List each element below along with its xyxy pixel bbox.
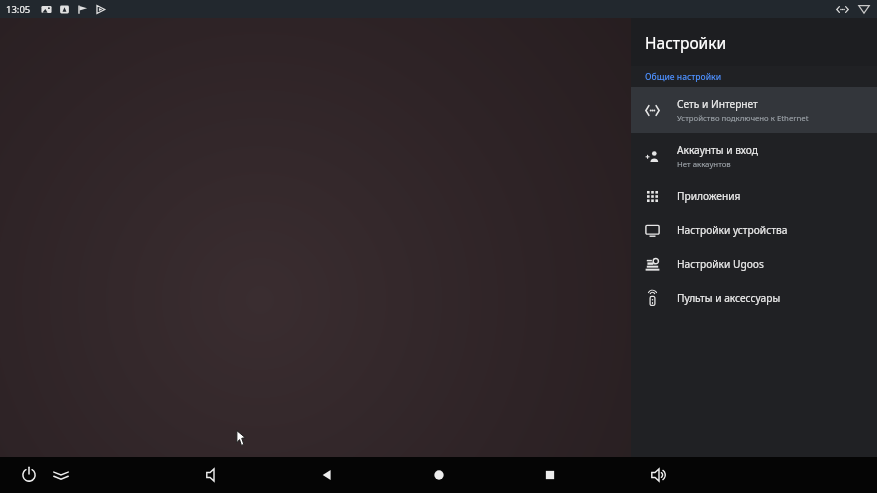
staticText: Сеть и Интернет [677,97,758,111]
button[interactable]: Volume up [648,464,670,486]
button[interactable]: Recents [539,464,561,486]
staticText: Пульты и аксессуары [677,291,781,305]
staticText: Устройство подключено к Ethernet [677,113,809,124]
button[interactable]: Collapse [50,464,72,486]
button[interactable]: Настройки Ugoos [631,247,877,281]
button[interactable]: Volume down [203,464,225,486]
staticText: 13:05 [6,3,31,16]
staticText: Аккаунты и вход [677,143,758,157]
staticText: Приложения [677,189,741,203]
staticText: Общие настройки [645,71,722,83]
staticText: Настройки устройства [677,223,788,237]
button[interactable]: Пульты и аксессуары [631,281,877,315]
button[interactable]: Сеть и Интернет [631,87,877,133]
staticText: Настройки Ugoos [677,257,764,271]
button[interactable]: Home [428,464,450,486]
button[interactable]: Приложения [631,179,877,213]
button[interactable]: Аккаунты и вход [631,133,877,179]
button[interactable]: Power [18,464,40,486]
button[interactable]: Back [316,464,338,486]
staticText: Настройки [645,32,727,53]
staticText: Нет аккаунтов [677,159,731,170]
button[interactable]: Настройки устройства [631,213,877,247]
